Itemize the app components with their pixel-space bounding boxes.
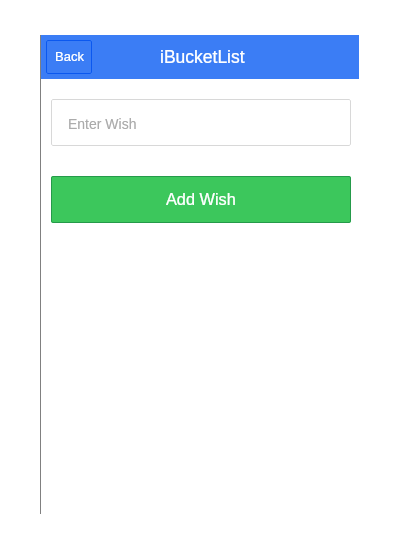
staticText: Add Wish	[166, 190, 236, 208]
staticText: Back	[55, 49, 84, 64]
button[interactable]: Back	[46, 40, 92, 74]
staticText: Enter Wish	[68, 116, 137, 132]
button[interactable]: Add Wish	[51, 176, 351, 223]
staticText: iBucketList	[160, 47, 245, 67]
button[interactable]: Enter Wish text field	[51, 99, 351, 146]
